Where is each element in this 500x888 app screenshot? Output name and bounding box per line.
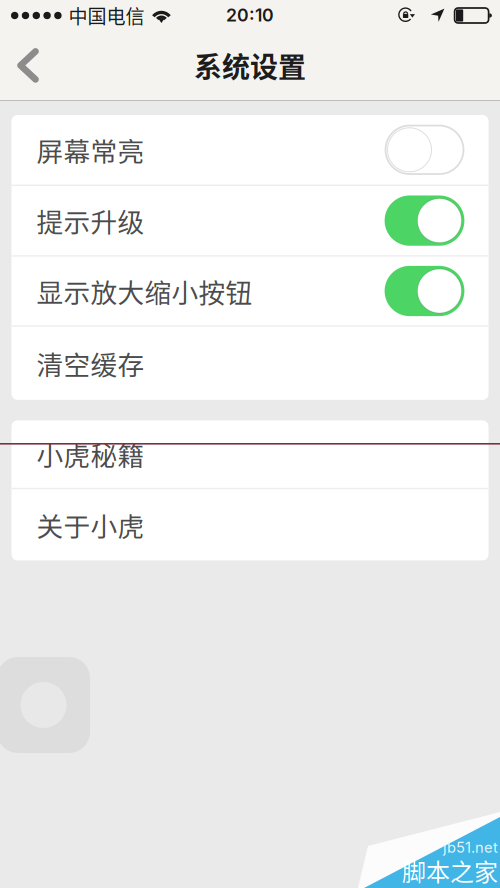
button[interactable]: AssistiveTouch bbox=[0, 657, 90, 753]
staticText: 提示升级 bbox=[36, 201, 144, 240]
staticText: 清空缓存 bbox=[36, 344, 144, 383]
staticText: jb51.net bbox=[443, 838, 498, 856]
button[interactable]: 小虎秘籍 bbox=[11, 420, 488, 488]
staticText: 20:10 bbox=[226, 4, 274, 26]
staticText: 系统设置 bbox=[194, 45, 306, 86]
staticText: 中国电信 bbox=[69, 2, 145, 29]
staticText: 关于小虎 bbox=[36, 505, 144, 544]
button[interactable]: 提示升级 bbox=[11, 186, 488, 255]
button[interactable]: Back bbox=[0, 40, 55, 91]
button[interactable]: 屏幕常亮 bbox=[11, 115, 488, 185]
staticText: 小虎秘籍 bbox=[36, 435, 144, 473]
button[interactable]: 显示放大缩小按钮 bbox=[11, 257, 488, 325]
button[interactable]: 清空缓存 bbox=[11, 327, 488, 400]
button[interactable]: 关于小虎 bbox=[11, 489, 488, 560]
staticText: 脚本之家 bbox=[402, 853, 498, 888]
staticText: 屏幕常亮 bbox=[36, 130, 144, 169]
staticText: 显示放大缩小按钮 bbox=[36, 272, 252, 310]
